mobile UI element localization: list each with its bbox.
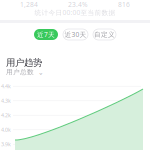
staticText: 3.9k — [1, 141, 11, 148]
button[interactable]: 近30天 — [63, 29, 88, 40]
staticText: 统计今日00:00至当前数据 — [34, 8, 115, 17]
staticText: 用户总数 ⌄ — [6, 68, 44, 76]
staticText: 23.4% — [68, 0, 88, 9]
staticText: 自定义 — [94, 30, 115, 39]
staticText: 4.0k — [1, 126, 11, 133]
staticText: 4.3k — [1, 97, 11, 104]
button[interactable]: 近7天 — [34, 29, 58, 40]
button[interactable]: 用户总数 ⌄ — [6, 68, 44, 76]
button[interactable]: 自定义 — [93, 29, 116, 40]
staticText: 近30天 — [64, 30, 86, 39]
staticText: 1,284 — [20, 0, 38, 9]
staticText: 816 — [118, 0, 130, 9]
staticText: 用户趋势 — [6, 57, 42, 68]
staticText: 4.4k — [1, 83, 11, 90]
staticText: 近7天 — [37, 30, 55, 39]
staticText: 4.2k — [1, 112, 11, 119]
